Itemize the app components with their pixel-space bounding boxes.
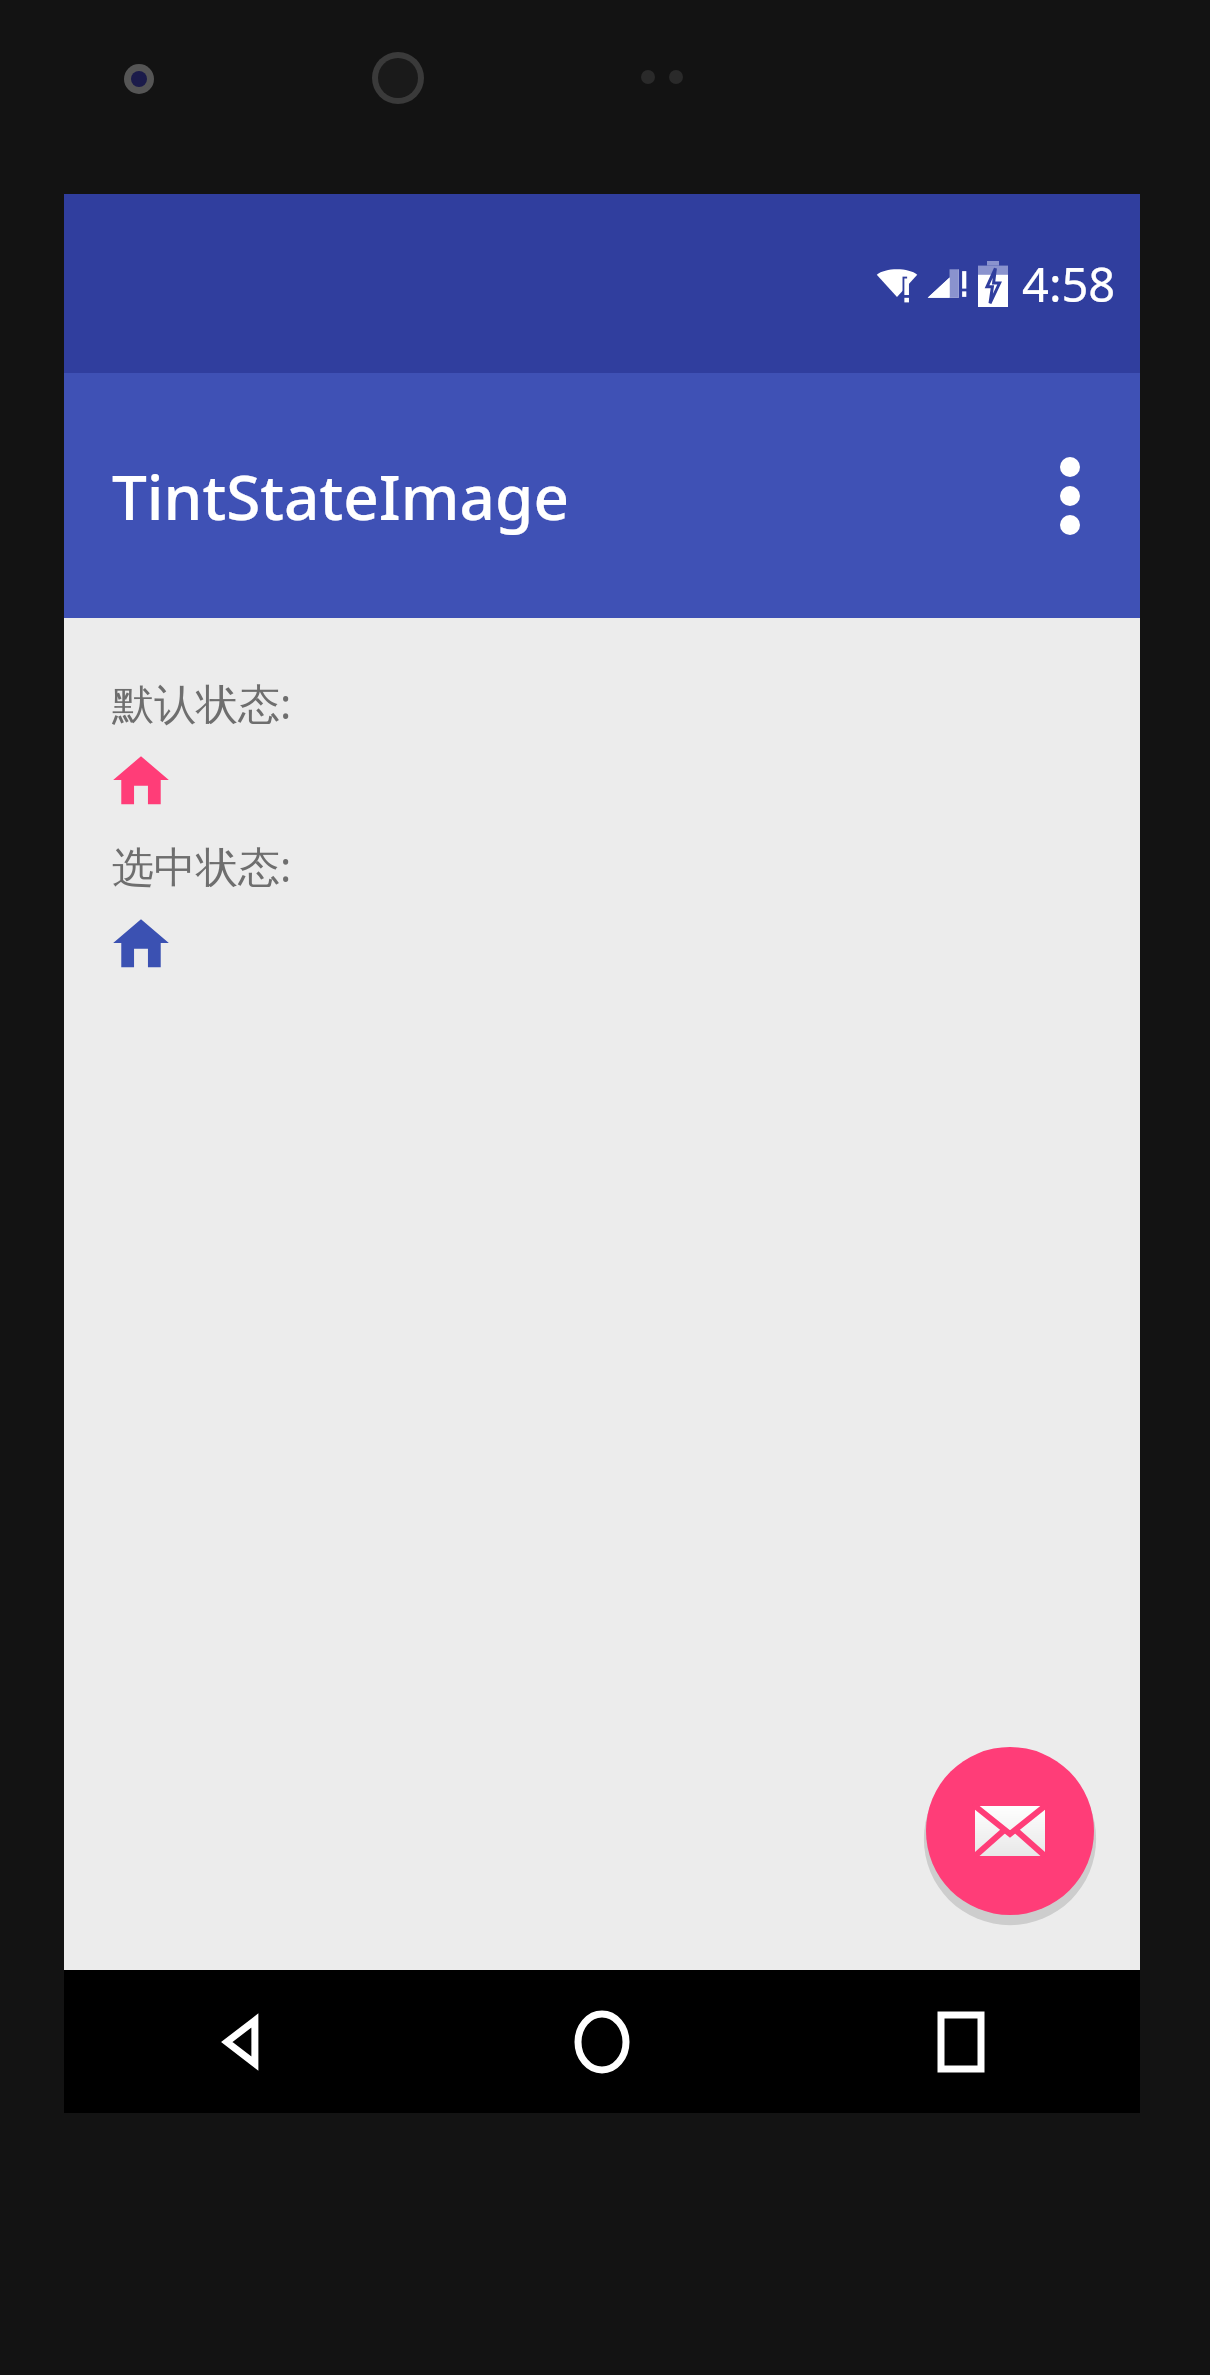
button[interactable]: Compose mail — [926, 1747, 1094, 1915]
button[interactable]: Home default — [112, 751, 170, 809]
button[interactable]: More options — [1014, 440, 1126, 552]
button[interactable]: Home selected — [112, 914, 170, 972]
staticText: 4:58 — [1022, 252, 1116, 316]
button[interactable]: Home — [422, 1970, 781, 2113]
staticText: 默认状态: — [112, 674, 292, 731]
staticText: 选中状态: — [112, 837, 292, 894]
button[interactable]: Back — [64, 1970, 422, 2113]
button[interactable]: Recent apps — [781, 1970, 1140, 2113]
staticText: TintStateImage — [112, 454, 570, 538]
